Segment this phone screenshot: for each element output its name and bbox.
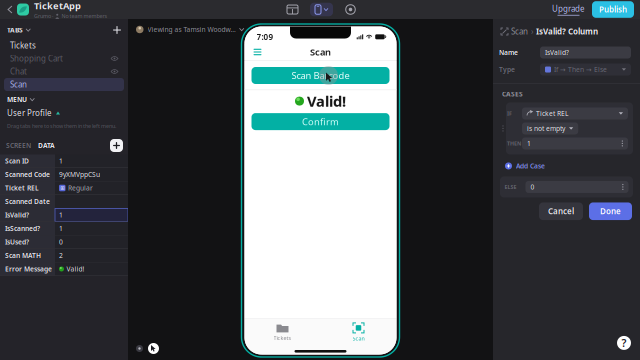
staticText: Scanned Code [5,170,50,179]
staticText: IsScanned? [5,224,40,233]
staticText: ELSE [504,183,516,190]
staticText: DATA [38,141,55,150]
staticText: Scan Barcode [291,69,349,82]
staticText: No team members [61,12,107,19]
staticText: Regular [68,184,93,192]
staticText: Valid! [307,91,346,111]
staticText: Error Message [5,265,52,273]
button[interactable]: Data view [284,2,301,16]
button[interactable]: Tickets [0,39,128,52]
button[interactable]: Shopping Cart [0,52,128,65]
button[interactable]: Cancel [539,202,583,220]
staticText: Scan [310,46,331,58]
button[interactable]: Select tool [148,343,159,354]
staticText: MENU [7,95,27,104]
button[interactable]: Publish [592,1,634,18]
staticText: Scan [511,26,528,37]
button[interactable]: Preview mode [342,2,359,16]
staticText: 7:09 [256,31,273,42]
button[interactable]: Confirm [251,113,389,130]
staticText: Tickets [273,334,291,341]
staticText: Type [499,65,515,74]
button[interactable]: Scan Barcode [251,67,389,84]
button[interactable]: Scan [0,78,128,91]
staticText: ⊞ [60,185,64,191]
staticText: Ticket REL [5,184,39,192]
staticText: TicketApp [34,0,81,12]
staticText: THEN [507,140,521,147]
staticText: IsValid? [545,48,569,57]
button[interactable]: Menu [250,45,264,59]
staticText: Chat [10,66,27,77]
button[interactable]: Done [589,202,632,220]
staticText: Cancel [548,206,574,217]
staticText: 1 [59,224,63,233]
staticText: IsValid? Column [536,26,598,37]
staticText: Scan [352,335,364,342]
button[interactable]: DATA [31,141,55,150]
staticText: 0 [59,238,63,246]
button[interactable]: Device size [310,3,333,16]
staticText: Shopping Cart [10,53,63,64]
staticText: Add Case [516,161,545,170]
staticText: 2 [59,251,63,260]
staticText: User Profile [7,108,52,118]
staticText: 1 [59,157,63,165]
staticText: › [531,26,533,37]
button[interactable]: Add Case [505,161,632,170]
staticText: Name [499,48,518,57]
staticText: Done [600,206,621,217]
staticText: If → Then → Else [554,65,607,74]
staticText: Ticket REL [536,109,568,118]
staticText: Scan MATH [5,251,41,260]
staticText: Scan ID [5,157,29,165]
staticText: Scanned Date [5,197,50,206]
button[interactable]: Tickets [244,323,320,341]
button[interactable]: Chat [0,65,128,78]
staticText: TABS [7,26,23,34]
staticText: Valid! [66,265,84,273]
staticText: IsValid? [5,211,29,219]
button[interactable]: Add tab [111,24,123,36]
staticText: 1 [59,211,63,219]
staticText: Scan [10,79,27,90]
staticText: 1 [527,139,531,148]
button[interactable]: Scan [320,323,396,342]
button[interactable]: Back [3,0,17,19]
staticText: Drag tabs here to show them in the left … [7,122,116,130]
button[interactable]: Zoom [134,343,145,354]
button[interactable]: Viewing as Tamsin Woodw… [136,25,244,34]
button[interactable]: Help [617,336,631,350]
staticText: Confirm [302,115,339,128]
staticText: 0 [530,182,534,191]
staticText: Viewing as Tamsin Woodw… [147,25,235,34]
staticText: Grumo · [34,12,53,19]
staticText: CASES [502,90,523,98]
button[interactable]: Add field [110,139,123,152]
staticText: Publish [599,4,627,15]
staticText: SCREEN [6,141,31,150]
button[interactable]: SCREEN [6,141,31,150]
staticText: IF [507,110,512,117]
staticText: is not empty [527,124,565,133]
staticText: ? [621,336,626,350]
button[interactable]: Upgrade [552,3,585,15]
staticText: IsUsed? [5,238,29,246]
staticText: 9yXMVppCSu [59,170,100,179]
staticText: Upgrade [552,3,585,14]
staticText: Tickets [10,40,36,51]
